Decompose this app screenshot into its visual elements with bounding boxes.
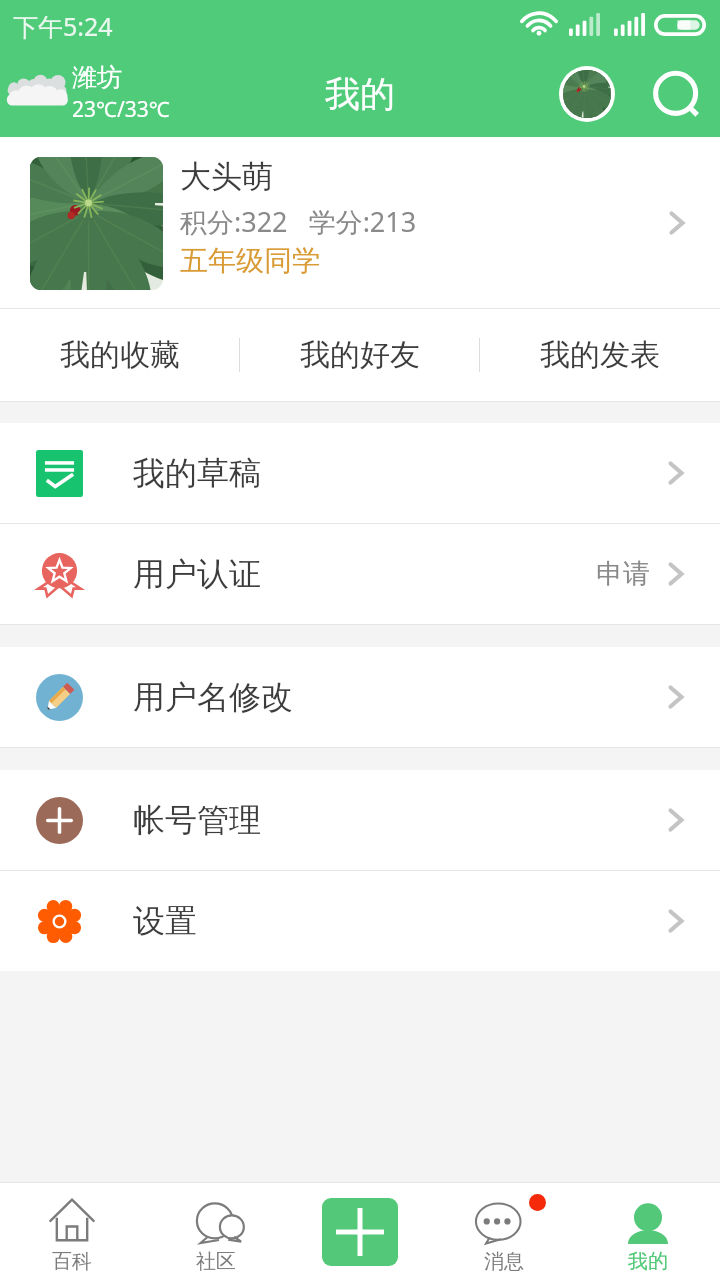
staticText: 我的收藏 — [60, 336, 180, 374]
staticText: 用户名修改 — [133, 677, 293, 717]
staticText: 帐号管理 — [133, 800, 261, 840]
button[interactable]: 用户认证 — [0, 524, 720, 624]
staticText: 申请 — [596, 557, 650, 591]
staticText: 我的发表 — [540, 336, 660, 374]
staticText: 23℃/33℃ — [72, 95, 170, 124]
button[interactable]: 我的好友 — [240, 309, 480, 401]
button[interactable]: 我的 — [576, 1183, 720, 1280]
staticText: 大头萌 — [180, 157, 273, 196]
staticText: 我的 — [628, 1249, 668, 1274]
staticText: 我的 — [325, 72, 395, 116]
staticText: 积分:322 学分:213 — [180, 203, 417, 240]
button[interactable]: 我的收藏 — [0, 309, 240, 401]
button[interactable]: 我的草稿 — [0, 423, 720, 523]
staticText: 百科 — [52, 1249, 92, 1274]
staticText: 潍坊 — [72, 62, 122, 93]
staticText: 五年级同学 — [180, 243, 320, 278]
staticText: 社区 — [196, 1249, 236, 1274]
staticText: 用户认证 — [133, 554, 261, 594]
staticText: 我的草稿 — [133, 453, 261, 493]
button[interactable]: 设置 — [0, 871, 720, 971]
staticText: 设置 — [133, 901, 197, 941]
staticText: 消息 — [484, 1249, 524, 1274]
button[interactable]: 帐号管理 — [0, 770, 720, 870]
button[interactable]: 百科 — [0, 1183, 144, 1280]
button[interactable]: Add — [288, 1183, 432, 1280]
button[interactable]: 大头萌 — [0, 137, 720, 308]
button[interactable]: 我的发表 — [480, 309, 720, 401]
button[interactable]: Profile avatar — [559, 66, 615, 122]
button[interactable]: 消息 — [432, 1183, 576, 1280]
button[interactable]: 用户名修改 — [0, 647, 720, 747]
staticText: 下午5:24 — [13, 9, 113, 43]
button[interactable]: 社区 — [144, 1183, 288, 1280]
button[interactable]: 潍坊 — [2, 62, 170, 124]
button[interactable]: Search — [648, 66, 716, 134]
staticText: 我的好友 — [300, 336, 420, 374]
